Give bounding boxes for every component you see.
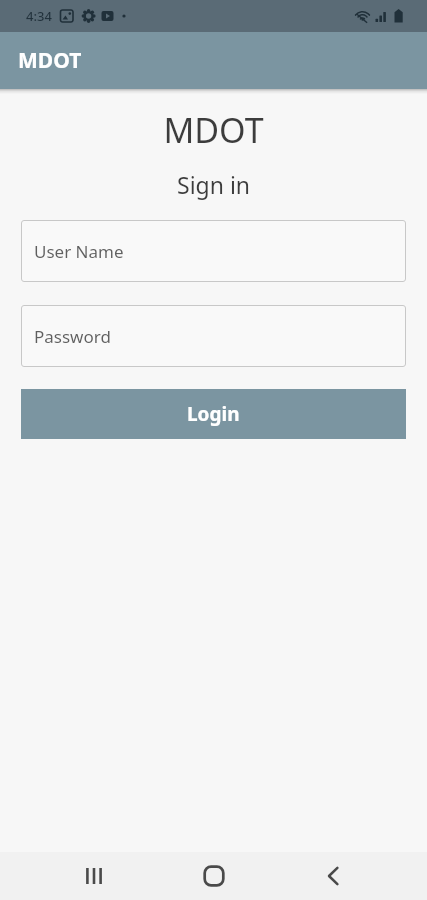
button[interactable]: Back <box>297 852 369 900</box>
staticText: MDOT <box>163 107 264 153</box>
staticText: Login <box>187 401 240 427</box>
button[interactable]: Recents <box>58 852 130 900</box>
staticText: MDOT <box>18 46 82 75</box>
button[interactable]: Home <box>178 852 250 900</box>
button[interactable]: Password <box>21 305 406 367</box>
staticText: 4:34 <box>26 7 52 25</box>
button[interactable]: Login <box>21 389 406 439</box>
staticText: Sign in <box>177 169 251 200</box>
staticText: User Name <box>34 240 124 263</box>
staticText: Password <box>34 325 111 348</box>
button[interactable]: User Name <box>21 220 406 282</box>
